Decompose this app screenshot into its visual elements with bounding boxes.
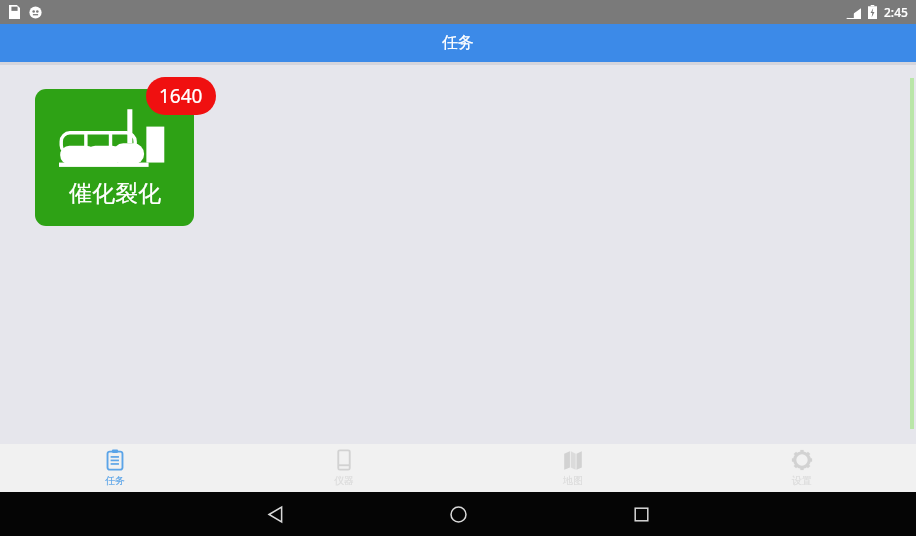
staticText: 1640	[159, 83, 203, 109]
staticText: 2:45	[884, 4, 908, 20]
staticText: 任务	[105, 474, 125, 487]
staticText: 仪器	[334, 474, 354, 487]
staticText: 设置	[792, 474, 812, 487]
button[interactable]: 仪器	[229, 444, 458, 492]
button[interactable]: Home	[367, 492, 550, 536]
button[interactable]: 地图	[458, 444, 687, 492]
button[interactable]: 设置	[687, 444, 916, 492]
staticText: 地图	[563, 474, 583, 487]
button[interactable]: 1640	[146, 77, 216, 115]
button[interactable]: Recent apps	[550, 492, 733, 536]
staticText: 任务	[442, 33, 474, 53]
button[interactable]: Back	[184, 492, 367, 536]
button[interactable]: 催化裂化	[35, 89, 194, 226]
staticText: 催化裂化	[69, 179, 161, 208]
button[interactable]: 任务	[0, 444, 229, 492]
